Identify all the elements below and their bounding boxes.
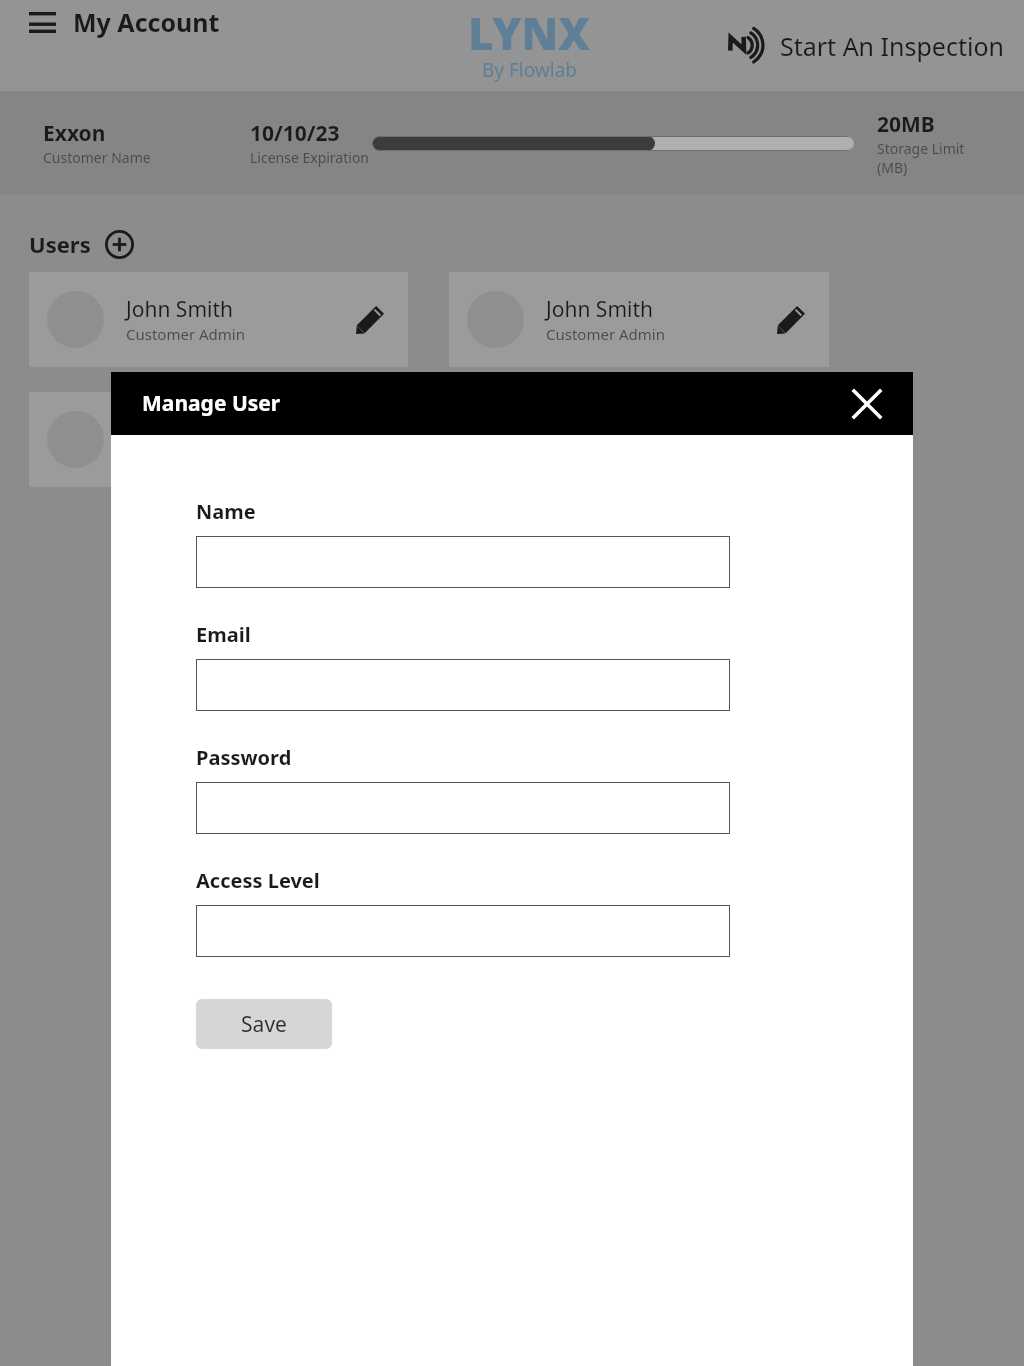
staticText: Exxon <box>43 119 106 148</box>
staticText: License Expiration <box>250 148 370 167</box>
staticText: Email <box>196 621 251 648</box>
button[interactable]: Save <box>196 999 332 1049</box>
staticText: Start An Inspection <box>780 29 1004 63</box>
staticText: Customer Admin <box>546 324 665 344</box>
staticText: 10/10/23 <box>250 119 340 148</box>
button[interactable]: Edit user <box>771 300 811 340</box>
button[interactable]: Close <box>847 384 887 424</box>
button[interactable]: Users <box>29 229 134 259</box>
staticText: Password <box>196 744 292 771</box>
staticText: Access Level <box>196 867 320 894</box>
staticText: Users <box>29 229 91 259</box>
staticText: Manage User <box>142 389 281 418</box>
staticText: Name <box>196 498 256 525</box>
staticText: Storage Limit (MB) <box>877 139 988 177</box>
staticText: LYNX <box>468 3 591 63</box>
staticText: 20MB <box>877 110 935 139</box>
button[interactable]: Menu <box>20 0 64 44</box>
staticText: John Smith <box>126 295 233 324</box>
button[interactable]: Edit user <box>350 420 390 460</box>
staticText: John Smith <box>546 295 653 324</box>
button[interactable] <box>196 782 730 834</box>
staticText: Customer Admin <box>126 324 245 344</box>
other: Add user <box>104 229 134 259</box>
staticText: My Account <box>73 5 220 39</box>
button[interactable]: John Smith <box>29 272 408 367</box>
button[interactable]: Edit user <box>350 300 390 340</box>
button[interactable]: John Smith <box>449 272 829 367</box>
button[interactable]: Start An Inspection <box>728 27 1004 65</box>
button[interactable]: John Smith <box>29 392 408 487</box>
staticText: Customer Name <box>43 148 151 167</box>
button[interactable] <box>196 536 730 588</box>
staticText: By Flowlab <box>482 57 578 83</box>
staticText: Save <box>241 1010 287 1039</box>
button[interactable] <box>196 905 730 957</box>
staticText: John Smith <box>126 415 233 444</box>
button[interactable] <box>196 659 730 711</box>
